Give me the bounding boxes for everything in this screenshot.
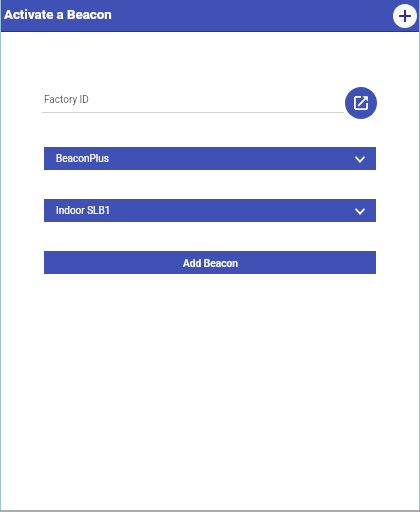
staticText: Activate a Beacon bbox=[4, 7, 112, 23]
staticText: Add Beacon bbox=[183, 258, 238, 270]
staticText: Factory ID bbox=[44, 94, 89, 106]
button[interactable]: BeaconPlus bbox=[44, 147, 376, 170]
staticText: BeaconPlus bbox=[56, 153, 109, 165]
button[interactable]: Add beacon bbox=[393, 4, 417, 28]
button[interactable]: Add Beacon bbox=[44, 251, 376, 274]
button[interactable]: Indoor SLB1 bbox=[44, 199, 376, 222]
staticText: Indoor SLB1 bbox=[56, 205, 111, 217]
button[interactable]: Scan beacon code bbox=[345, 87, 377, 119]
button[interactable]: Factory ID bbox=[42, 88, 344, 113]
